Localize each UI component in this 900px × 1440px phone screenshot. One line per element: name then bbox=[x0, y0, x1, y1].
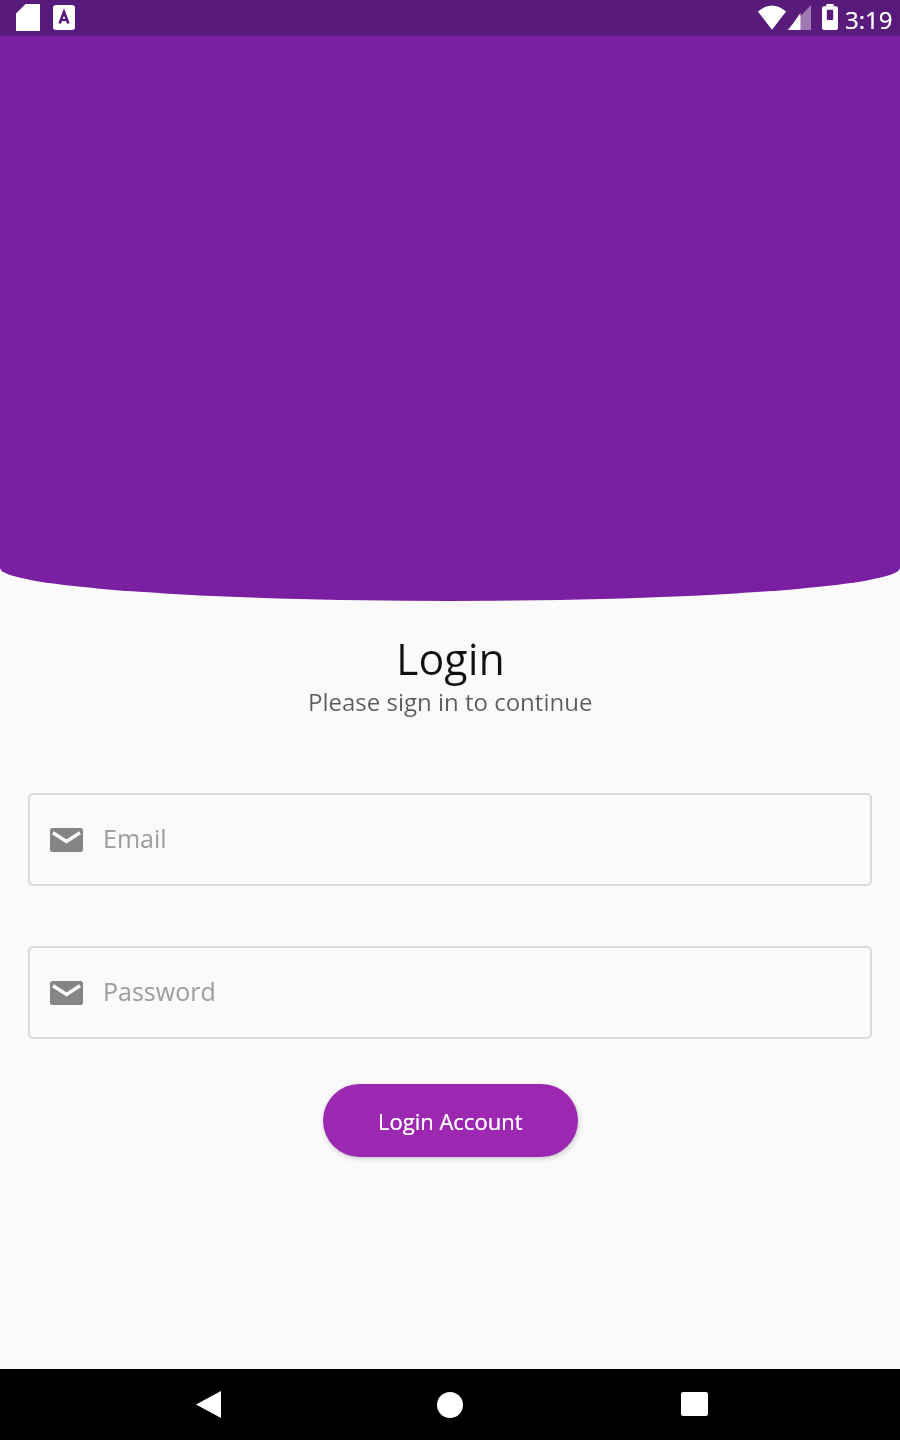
staticText: Please sign in to continue bbox=[308, 685, 593, 718]
staticText: Email bbox=[103, 821, 167, 855]
button[interactable]: Back bbox=[163, 1369, 253, 1440]
button[interactable]: Password bbox=[28, 946, 872, 1039]
button[interactable]: Login Account bbox=[323, 1084, 578, 1157]
staticText: Login bbox=[396, 629, 505, 688]
button[interactable]: Email bbox=[28, 793, 872, 886]
staticText: Password bbox=[103, 974, 216, 1008]
staticText: Login Account bbox=[378, 1106, 523, 1136]
button[interactable]: Home bbox=[405, 1369, 495, 1440]
staticText: 3:19 bbox=[845, 3, 893, 36]
button[interactable]: Recent apps bbox=[648, 1369, 738, 1440]
